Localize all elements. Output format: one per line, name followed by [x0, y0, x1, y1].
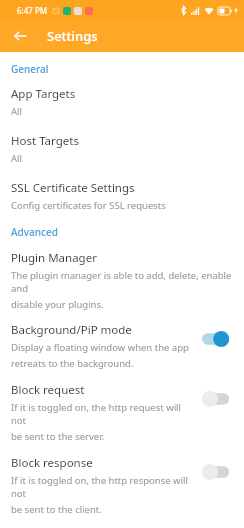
- button[interactable]: Block request: [0, 382, 244, 443]
- button[interactable]: App Targets: [0, 86, 244, 118]
- staticText: Advanced: [11, 225, 58, 239]
- staticText: If it is toggled on, the http request wi…: [11, 401, 198, 427]
- button[interactable]: Background/PiP mode: [0, 322, 244, 370]
- staticText: Display a floating window when the app: [11, 341, 189, 354]
- staticText: General: [11, 62, 49, 76]
- staticText: retreats to the background.: [11, 357, 134, 370]
- button[interactable]: Block request: [202, 391, 236, 407]
- staticText: Settings: [47, 27, 98, 45]
- staticText: All: [11, 105, 22, 118]
- staticText: be sent to the server.: [11, 430, 105, 443]
- staticText: App Targets: [11, 86, 76, 102]
- staticText: The plugin manager is able to add, delet…: [11, 269, 233, 295]
- staticText: SSL Certificate Settings: [11, 180, 135, 196]
- staticText: If it is toggled on, the http response w…: [11, 474, 198, 500]
- button[interactable]: SSL Certificate Settings: [0, 180, 244, 212]
- button[interactable]: Plugin Manager: [0, 250, 244, 311]
- staticText: disable your plugins.: [11, 298, 104, 311]
- staticText: Host Targets: [11, 133, 79, 149]
- staticText: Block request: [11, 382, 85, 398]
- staticText: Plugin Manager: [11, 250, 97, 266]
- staticText: be sent to the client.: [11, 503, 102, 516]
- button[interactable]: Back: [8, 24, 32, 48]
- button[interactable]: Host Targets: [0, 133, 244, 165]
- staticText: Background/PiP mode: [11, 322, 132, 338]
- button[interactable]: Block response: [0, 455, 244, 516]
- staticText: All: [11, 152, 22, 165]
- button[interactable]: Background/PiP mode: [202, 331, 236, 347]
- staticText: Config certificates for SSL requests: [11, 199, 166, 212]
- button[interactable]: Block response: [202, 464, 236, 480]
- staticText: 6:47 PM: [17, 5, 48, 16]
- staticText: Block response: [11, 455, 93, 471]
